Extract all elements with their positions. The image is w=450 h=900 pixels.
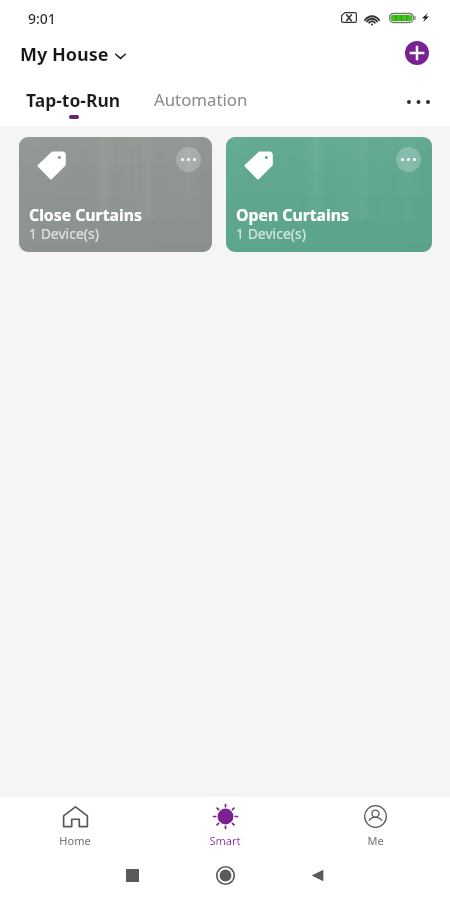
- staticText: Home: [59, 833, 91, 848]
- staticText: Me: [367, 833, 384, 848]
- button[interactable]: Smart: [150, 797, 300, 848]
- button[interactable]: Me: [300, 797, 450, 848]
- button[interactable]: Home: [205, 855, 245, 895]
- staticText: Automation: [154, 88, 248, 111]
- staticText: Close Curtains: [29, 204, 142, 226]
- button[interactable]: Home: [0, 797, 150, 848]
- button[interactable]: More options: [400, 88, 436, 116]
- button[interactable]: Recents: [112, 855, 152, 895]
- button[interactable]: Scene options: [396, 147, 421, 172]
- staticText: Open Curtains: [236, 204, 349, 226]
- staticText: Smart: [209, 833, 241, 848]
- staticText: 9:01: [28, 9, 56, 28]
- button[interactable]: Tap-to-Run: [26, 88, 121, 119]
- staticText: 1 Device(s): [29, 224, 99, 243]
- button[interactable]: Scene options: [19, 137, 212, 252]
- staticText: My House: [20, 42, 109, 67]
- button[interactable]: Scene options: [226, 137, 432, 252]
- button[interactable]: Add scene: [405, 41, 429, 65]
- button[interactable]: My House: [20, 42, 126, 67]
- staticText: 1 Device(s): [236, 224, 306, 243]
- staticText: Tap-to-Run: [26, 88, 121, 112]
- button[interactable]: Back: [297, 855, 337, 895]
- button[interactable]: Automation: [154, 88, 248, 111]
- button[interactable]: Scene options: [176, 147, 201, 172]
